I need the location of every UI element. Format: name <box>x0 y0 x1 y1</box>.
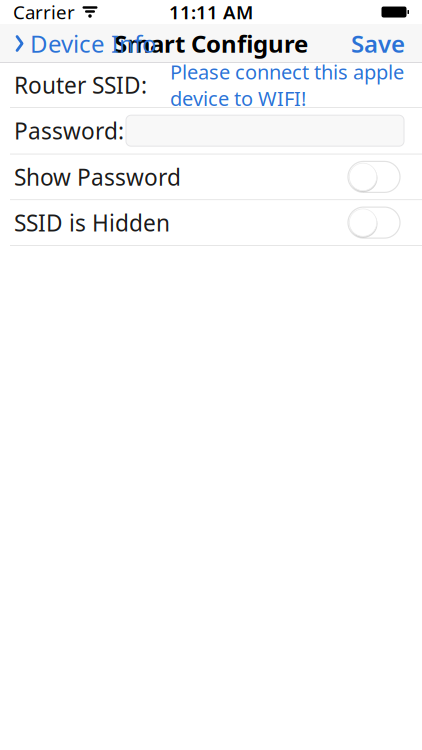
staticText: 11:11 AM <box>169 0 253 24</box>
staticText: SSID is Hidden <box>14 207 170 238</box>
staticText: Smart Configure <box>114 28 308 59</box>
staticText: Device Info <box>30 28 157 59</box>
button[interactable]: Please connect this apple device to WIFI… <box>170 58 404 111</box>
staticText: Save <box>351 28 405 59</box>
staticText: Show Password <box>14 162 181 192</box>
button[interactable]: Device Info <box>3 22 168 65</box>
staticText: Router SSID: <box>14 70 147 100</box>
staticText: Please connect this apple device to WIFI… <box>170 58 404 111</box>
button[interactable]: Save <box>337 22 419 65</box>
staticText: Carrier <box>13 0 75 24</box>
button[interactable]: SSID is Hidden <box>0 200 422 245</box>
button[interactable]: Show Password <box>0 154 422 199</box>
staticText: Password: <box>14 116 124 146</box>
